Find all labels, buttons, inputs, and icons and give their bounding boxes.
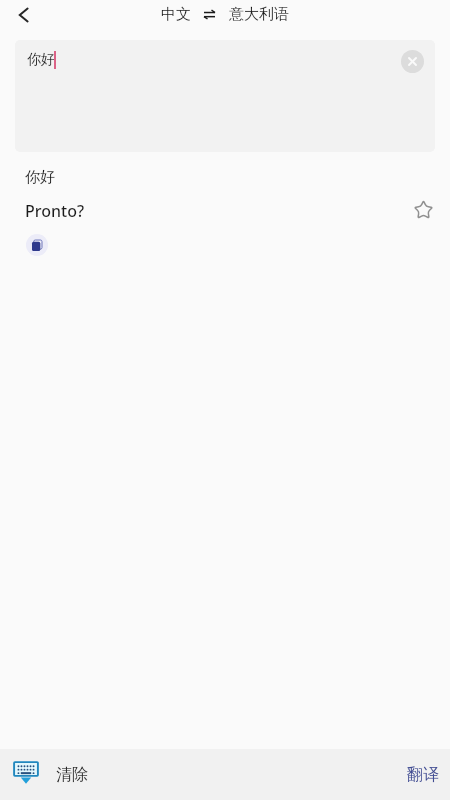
staticText: Pronto? xyxy=(25,200,85,222)
staticText: 意大利语 xyxy=(229,5,289,24)
button[interactable]: Copy translation xyxy=(26,234,48,256)
button[interactable]: Back xyxy=(0,0,46,30)
staticText: 翻译 xyxy=(407,765,439,785)
button[interactable]: 清除 xyxy=(13,749,88,800)
button[interactable]: Favorite xyxy=(407,193,439,225)
button[interactable]: 翻译 xyxy=(407,749,439,800)
staticText: 清除 xyxy=(56,765,88,785)
staticText: 中文 xyxy=(161,5,191,24)
staticText: 你好 xyxy=(25,168,55,187)
button[interactable]: Clear text xyxy=(401,50,424,73)
staticText: 你好 xyxy=(27,51,55,69)
